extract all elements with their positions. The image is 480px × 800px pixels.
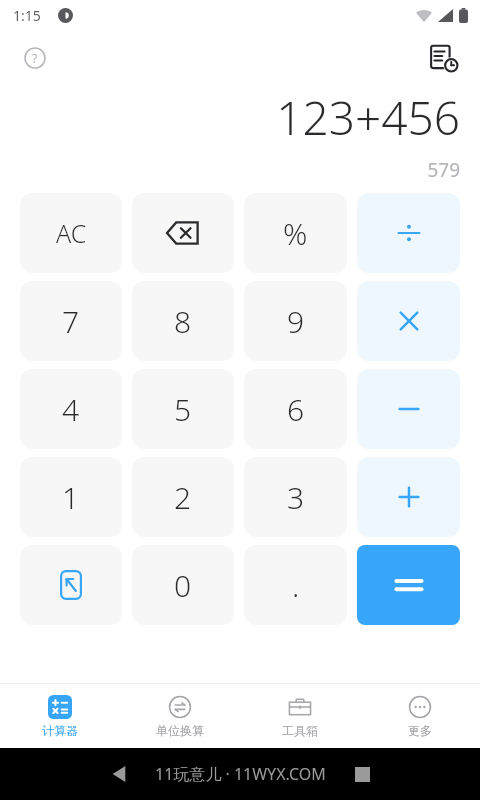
staticText: 单位换算 <box>156 723 204 738</box>
button[interactable]: 9 <box>244 281 347 361</box>
staticText: 579 <box>427 157 460 183</box>
button[interactable]: % <box>244 193 347 273</box>
button[interactable]: Help <box>18 41 52 75</box>
button[interactable]: 8 <box>132 281 234 361</box>
button[interactable]: AC <box>20 193 122 273</box>
staticText: 工具箱 <box>282 723 318 738</box>
staticText: 1 <box>62 477 80 518</box>
button[interactable]: Recents <box>342 754 382 794</box>
button[interactable]: Back <box>99 754 139 794</box>
button[interactable]: 单位换算 <box>120 684 240 748</box>
staticText: 3 <box>287 477 305 518</box>
button[interactable] <box>357 193 460 273</box>
staticText: . <box>292 565 300 606</box>
staticText: 计算器 <box>42 723 78 738</box>
staticText: 8 <box>174 301 192 342</box>
button[interactable]: 7 <box>20 281 122 361</box>
staticText: 7 <box>62 301 80 342</box>
button[interactable]: 2 <box>132 457 234 537</box>
staticText: 4 <box>62 389 80 430</box>
staticText: 2 <box>174 477 192 518</box>
button[interactable]: Insert <box>20 545 122 625</box>
button[interactable]: 更多 <box>360 684 480 748</box>
staticText: % <box>283 213 308 254</box>
staticText: 5 <box>174 389 192 430</box>
button[interactable]: 4 <box>20 369 122 449</box>
staticText: 更多 <box>408 723 432 738</box>
button[interactable]: 1 <box>20 457 122 537</box>
staticText: 123+456 <box>276 86 460 149</box>
button[interactable]: 5 <box>132 369 234 449</box>
staticText: 1:15 <box>13 6 41 25</box>
button[interactable]: . <box>244 545 347 625</box>
staticText: ? <box>32 50 38 66</box>
staticText: 0 <box>174 565 192 606</box>
button[interactable]: History <box>424 38 464 78</box>
staticText: 6 <box>287 389 305 430</box>
button[interactable] <box>357 457 460 537</box>
button[interactable]: 0 <box>132 545 234 625</box>
button[interactable] <box>357 281 460 361</box>
button[interactable]: Backspace <box>132 193 234 273</box>
staticText: AC <box>56 216 87 250</box>
button[interactable]: 6 <box>244 369 347 449</box>
button[interactable]: 计算器 <box>0 684 120 748</box>
button[interactable]: 工具箱 <box>240 684 360 748</box>
button[interactable] <box>357 369 460 449</box>
button[interactable]: 3 <box>244 457 347 537</box>
staticText: 11玩意儿 · 11WYX.COM <box>155 763 326 785</box>
button[interactable] <box>357 545 460 625</box>
staticText: 9 <box>287 301 305 342</box>
